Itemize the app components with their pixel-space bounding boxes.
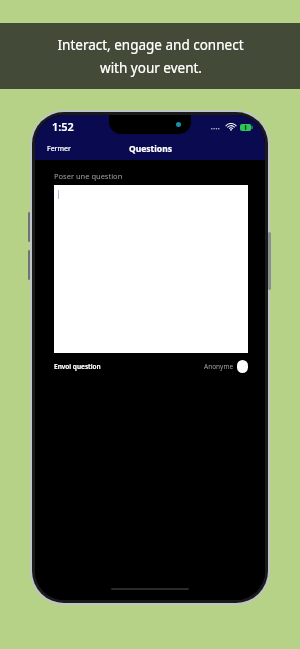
staticText: 1:52	[52, 119, 74, 134]
staticText: Questions	[129, 143, 172, 155]
staticText: with your event.	[100, 59, 202, 77]
button[interactable]: Anonyme	[204, 360, 248, 373]
button[interactable]: Envoi question	[54, 362, 101, 371]
staticText: Poser une question	[54, 171, 123, 181]
button[interactable]: Fermer	[35, 140, 83, 158]
staticText: Fermer	[47, 144, 71, 154]
other: Wi-Fi	[226, 123, 236, 131]
staticText: Anonyme	[204, 362, 234, 371]
staticText: Envoi question	[54, 362, 101, 371]
staticText: Interact, engage and connect	[57, 36, 244, 54]
other: Battery	[240, 124, 253, 131]
other: Cellular signal	[211, 123, 222, 131]
